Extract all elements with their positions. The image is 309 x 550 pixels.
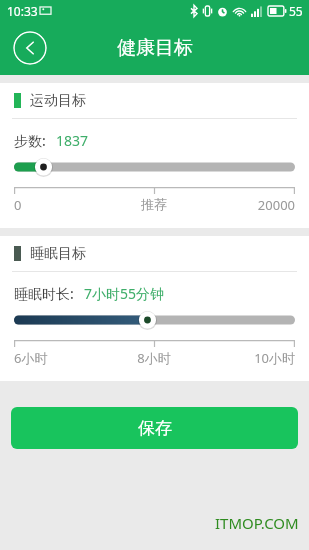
staticText: 保存 [138, 418, 172, 439]
button[interactable]: Back [13, 31, 47, 65]
staticText: 6小时 [14, 349, 107, 367]
staticText: 55 [289, 3, 303, 19]
staticText: 8小时 [107, 349, 201, 367]
staticText: 运动目标 [30, 92, 86, 110]
staticText: 健康目标 [117, 36, 193, 60]
staticText: 0 [14, 196, 107, 214]
button[interactable]: 保存 [11, 407, 298, 449]
staticText: 1837 [56, 131, 89, 150]
staticText: 睡眠目标 [30, 245, 86, 263]
staticText: 20000 [201, 196, 295, 214]
staticText: 步数: [14, 131, 46, 150]
staticText: 睡眠时长: [14, 284, 74, 303]
button[interactable]: Slider [0, 156, 309, 178]
staticText: 10小时 [201, 349, 295, 367]
staticText: ITMOP.COM [215, 513, 299, 533]
staticText: 7小时55分钟 [84, 284, 165, 303]
button[interactable]: Slider [0, 309, 309, 331]
staticText: 10:33 [7, 3, 38, 19]
staticText: 推荐 [107, 196, 201, 212]
